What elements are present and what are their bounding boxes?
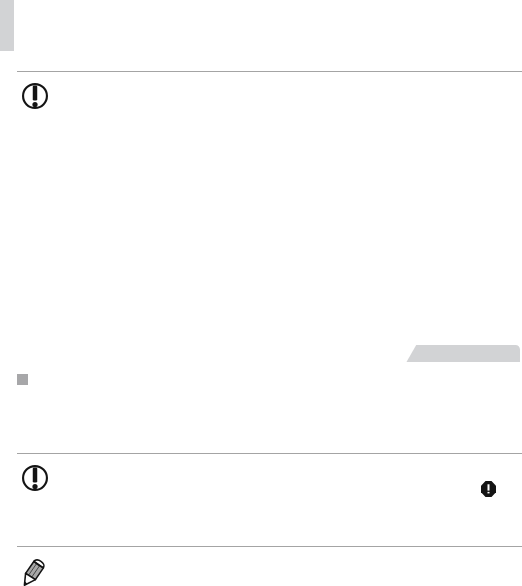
button[interactable]: Caution notice: [17, 76, 522, 116]
button[interactable]: Caution notice with alert: [17, 458, 522, 498]
button[interactable]: Note: [17, 551, 522, 586]
button[interactable]: Section tab: [406, 345, 520, 362]
